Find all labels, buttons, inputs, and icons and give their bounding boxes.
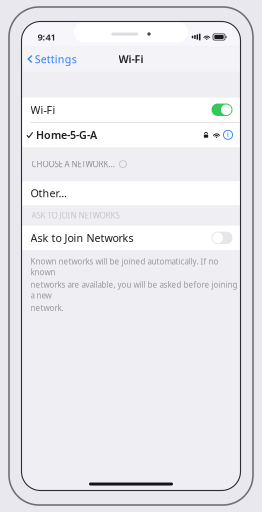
staticText: Wi-Fi: [30, 103, 55, 117]
staticText: Settings: [35, 52, 77, 66]
button[interactable]: Other…: [21, 181, 240, 205]
staticText: Known networks will be joined automatica…: [30, 256, 218, 277]
button[interactable]: Home-5-G-A: [21, 123, 240, 147]
staticText: Home-5-G-A: [36, 128, 97, 142]
button[interactable]: Settings: [21, 48, 77, 70]
staticText: CHOOSE A NETWORK…: [31, 159, 114, 169]
staticText: 9:41: [37, 31, 55, 43]
staticText: Ask to Join Networks: [30, 231, 133, 245]
staticText: network.: [30, 303, 63, 313]
button[interactable]: Wi-Fi: [21, 97, 240, 122]
staticText: Wi-Fi: [118, 52, 143, 66]
button[interactable]: Ask to Join Networks: [21, 226, 240, 250]
staticText: networks are available, you will be aske…: [30, 279, 237, 300]
staticText: Other…: [30, 186, 66, 200]
staticText: i: [227, 130, 229, 139]
staticText: ASK TO JOIN NETWORKS: [31, 210, 119, 221]
